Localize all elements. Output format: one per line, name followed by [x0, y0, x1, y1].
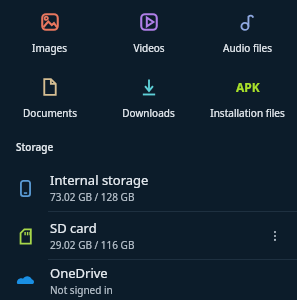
- other: Installation files: [235, 74, 261, 100]
- other: Downloads: [138, 76, 160, 98]
- button[interactable]: Audio files: [198, 4, 297, 59]
- button[interactable]: Downloads: [99, 69, 198, 124]
- staticText: APK: [236, 79, 260, 95]
- button[interactable]: Images: [0, 4, 99, 59]
- other: Videos: [138, 11, 160, 33]
- staticText: Images: [32, 41, 67, 55]
- button[interactable]: Documents: [0, 69, 99, 124]
- button[interactable]: OneDrive: [0, 260, 297, 300]
- other: SD card: [16, 227, 35, 246]
- staticText: Documents: [23, 106, 77, 120]
- other: Internal storage: [16, 179, 35, 198]
- other: Audio files: [237, 11, 259, 33]
- staticText: Storage: [16, 140, 54, 154]
- other: OneDrive: [15, 270, 35, 290]
- staticText: Installation files: [210, 106, 285, 120]
- staticText: Not signed in: [50, 283, 113, 297]
- other: Images: [39, 11, 61, 33]
- button[interactable]: Internal storage: [0, 164, 297, 211]
- staticText: OneDrive: [50, 264, 108, 282]
- button[interactable]: Installation files: [198, 69, 297, 124]
- button[interactable]: Videos: [99, 4, 198, 59]
- other: Documents: [39, 76, 61, 98]
- button[interactable]: SD card: [0, 212, 297, 259]
- staticText: Internal storage: [50, 171, 149, 189]
- staticText: Audio files: [223, 41, 272, 55]
- staticText: SD card: [50, 219, 97, 237]
- staticText: Downloads: [122, 106, 175, 120]
- staticText: Videos: [133, 41, 165, 55]
- staticText: 29.02 GB / 116 GB: [50, 238, 135, 252]
- button[interactable]: More options: [261, 222, 289, 250]
- staticText: 73.02 GB / 128 GB: [50, 190, 135, 204]
